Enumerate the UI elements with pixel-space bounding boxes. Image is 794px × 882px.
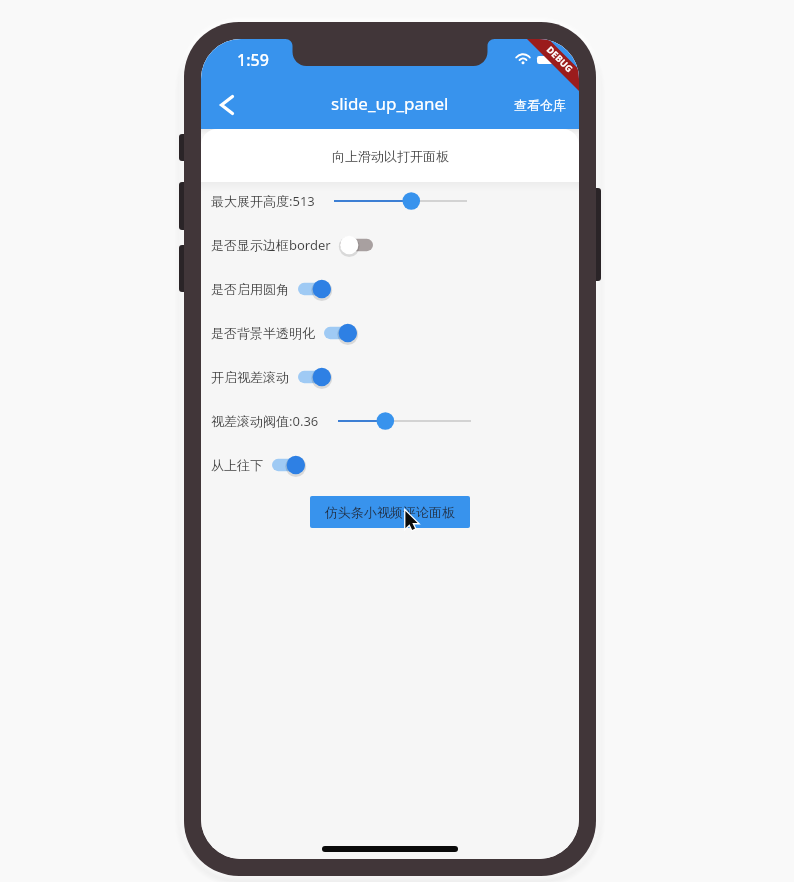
staticText: DEBUG bbox=[545, 43, 576, 75]
button[interactable]: 从上往下 bbox=[272, 443, 305, 487]
button[interactable]: 仿头条小视频评论面板 bbox=[310, 496, 470, 528]
button[interactable]: 开启视差滚动 bbox=[298, 355, 331, 399]
staticText: 是否背景半透明化 bbox=[211, 325, 315, 341]
staticText: 1:59 bbox=[237, 49, 269, 71]
staticText: 是否启用圆角 bbox=[211, 281, 289, 297]
staticText: 向上滑动以打开面板 bbox=[332, 148, 449, 164]
button[interactable]: 是否启用圆角 bbox=[298, 267, 331, 311]
staticText: 开启视差滚动 bbox=[211, 369, 289, 385]
button[interactable]: 视差滚动阀值:0.36 bbox=[338, 399, 471, 443]
button[interactable]: 是否背景半透明化 bbox=[324, 311, 357, 355]
button[interactable]: Back bbox=[207, 81, 247, 129]
staticText: 是否显示边框border bbox=[211, 236, 331, 254]
staticText: 仿头条小视频评论面板 bbox=[325, 504, 455, 520]
staticText: 查看仓库 bbox=[514, 97, 566, 113]
staticText: 最大展开高度:513 bbox=[211, 192, 315, 210]
button[interactable]: 最大展开高度:513 bbox=[334, 179, 467, 223]
staticText: 从上往下 bbox=[211, 457, 263, 473]
button[interactable]: 是否显示边框border bbox=[340, 223, 373, 267]
staticText: 视差滚动阀值:0.36 bbox=[211, 412, 319, 430]
staticText: slide_up_panel bbox=[331, 92, 449, 115]
button[interactable]: 查看仓库 bbox=[501, 81, 579, 129]
